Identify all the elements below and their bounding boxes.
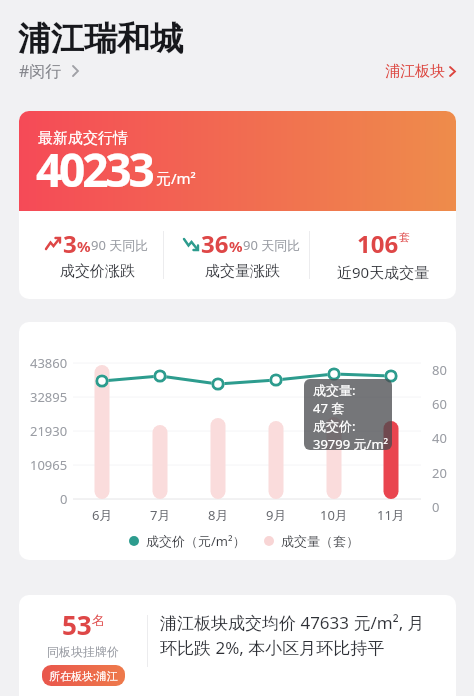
staticText: 成交价: <box>313 417 356 435</box>
button[interactable]: #闵行 <box>19 60 79 82</box>
staticText: % <box>229 236 243 256</box>
button[interactable]: 53 <box>19 595 456 696</box>
staticText: 39799 元/m² <box>313 435 389 450</box>
staticText: 成交量涨跌 <box>205 262 280 281</box>
staticText: 最新成交行情 <box>38 129 128 148</box>
staticText: 21930 <box>30 422 68 440</box>
button[interactable]: 浦江板块 <box>385 62 456 81</box>
staticText: 近90天成交量 <box>337 262 430 282</box>
staticText: 80 <box>432 361 447 379</box>
staticText: 8月 <box>208 506 229 524</box>
staticText: 20 <box>432 464 447 482</box>
staticText: 10965 <box>30 456 68 474</box>
staticText: 6月 <box>92 506 113 524</box>
staticText: 名 <box>92 612 105 628</box>
button[interactable]: 36 <box>164 211 310 299</box>
button[interactable]: 所在板块:浦江 <box>42 665 125 686</box>
staticText: 9月 <box>266 506 287 524</box>
staticText: #闵行 <box>19 60 62 82</box>
staticText: 浦江板块成交均价 47633 元/m², 月 环比跌 2%, 本小区月环比持平 <box>160 611 425 659</box>
staticText: 32895 <box>30 388 68 406</box>
staticText: 0 <box>60 490 68 508</box>
button[interactable]: 106 <box>310 211 456 299</box>
staticText: 60 <box>432 395 447 413</box>
staticText: % <box>77 236 91 256</box>
staticText: 元/m² <box>156 168 196 188</box>
button[interactable]: 3 <box>19 211 164 299</box>
staticText: 成交量（套） <box>281 533 359 549</box>
staticText: 成交价（元/m²） <box>146 532 246 550</box>
staticText: 43860 <box>30 354 68 372</box>
staticText: 106 <box>357 227 399 260</box>
staticText: 套 <box>399 230 410 244</box>
staticText: 同板块挂牌价 <box>47 644 119 659</box>
staticText: 11月 <box>377 506 405 524</box>
staticText: 所在板块:浦江 <box>49 668 118 683</box>
staticText: 90 天同比 <box>91 236 149 254</box>
staticText: 90 天同比 <box>243 236 301 254</box>
staticText: 3 <box>63 227 77 260</box>
staticText: 成交量: <box>313 381 356 399</box>
staticText: 浦江瑞和城 <box>18 18 183 60</box>
staticText: 浦江板块 <box>385 62 445 81</box>
staticText: 10月 <box>320 506 348 524</box>
staticText: 47 套 <box>313 399 345 417</box>
staticText: 53 <box>62 607 92 642</box>
button[interactable]: 最新成交行情 <box>19 111 456 211</box>
staticText: 40 <box>432 429 447 447</box>
staticText: 成交价涨跌 <box>60 262 135 281</box>
staticText: 40233 <box>36 138 152 201</box>
staticText: 36 <box>201 227 229 260</box>
staticText: 0 <box>432 498 440 516</box>
staticText: 7月 <box>150 506 171 524</box>
